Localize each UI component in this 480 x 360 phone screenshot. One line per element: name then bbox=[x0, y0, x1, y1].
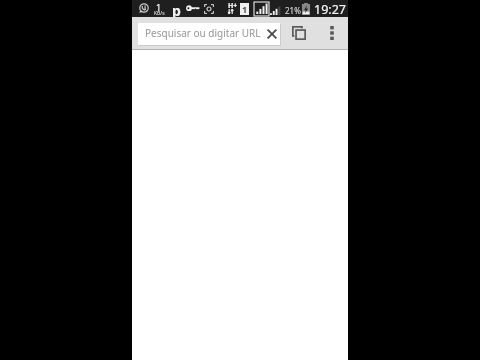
staticText: 19:27 bbox=[314, 1, 346, 18]
button[interactable]: Pesquisar ou digitar URL bbox=[138, 23, 280, 45]
button[interactable]: More options bbox=[320, 20, 344, 46]
staticText: p bbox=[172, 1, 181, 18]
staticText: 1 bbox=[242, 3, 248, 15]
staticText: 21% bbox=[285, 5, 301, 16]
staticText: Pesquisar ou digitar URL bbox=[145, 26, 261, 40]
staticText: KB/s bbox=[154, 10, 165, 17]
staticText: H+ bbox=[228, 1, 238, 11]
button[interactable]: Tabs bbox=[286, 20, 312, 46]
staticText: 1 bbox=[156, 1, 162, 13]
